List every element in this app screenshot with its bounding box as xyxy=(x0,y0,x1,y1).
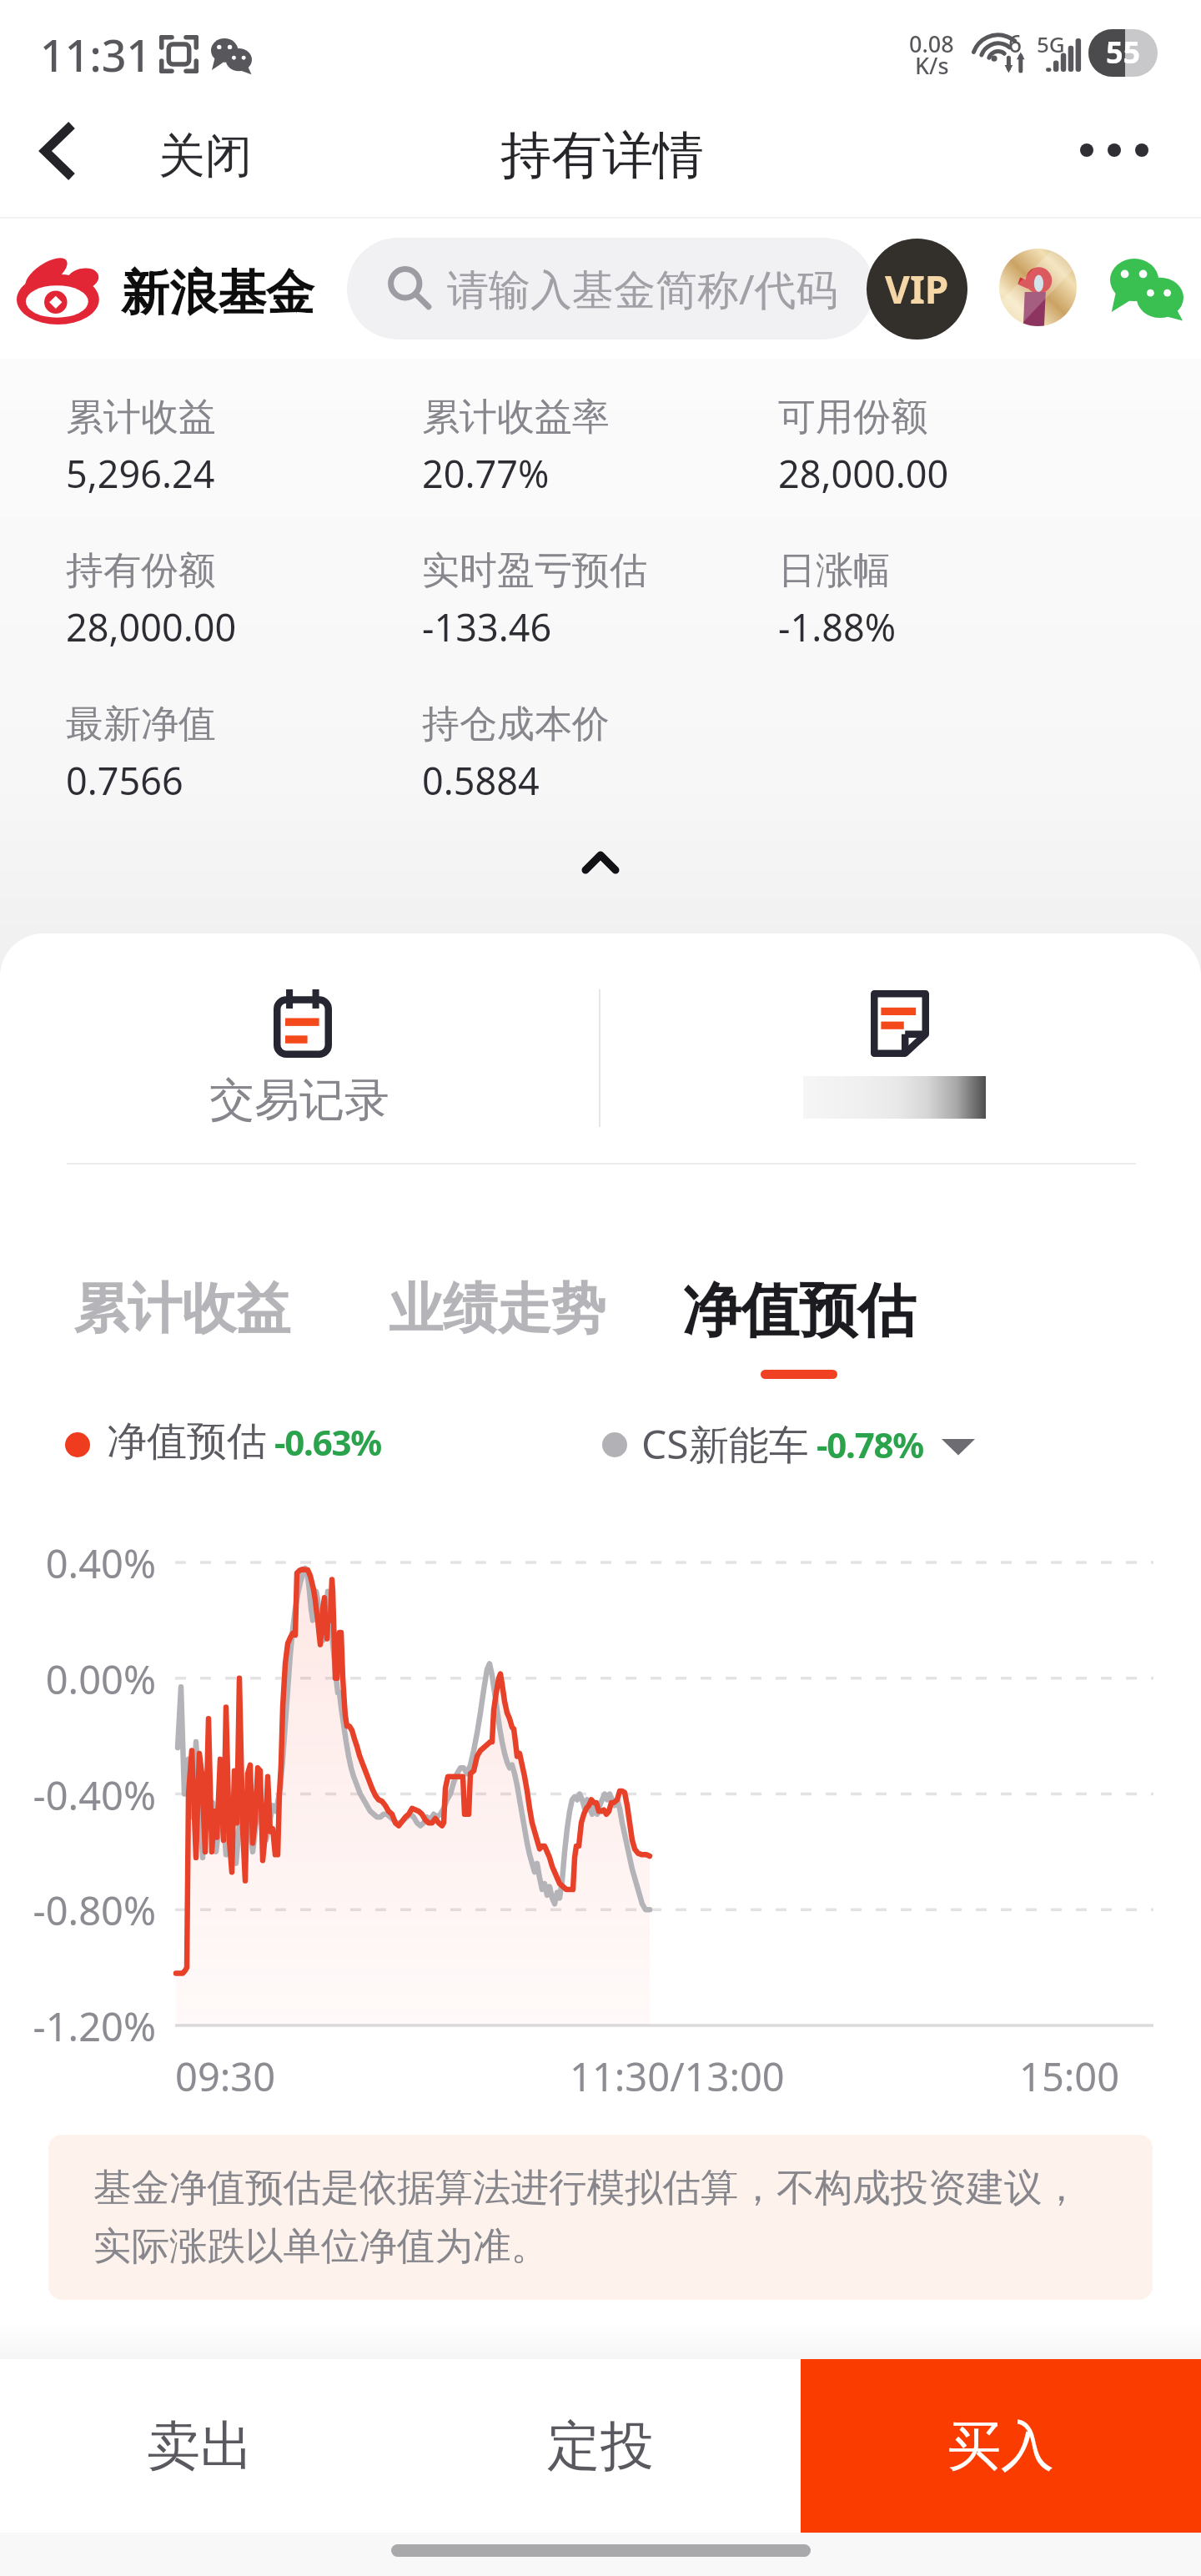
staticText: 定投 xyxy=(547,2412,654,2480)
staticText: CS新能车 xyxy=(641,1416,809,1472)
staticText: 可用份额 xyxy=(778,394,928,441)
staticText: 持仓成本价 xyxy=(422,701,610,748)
staticText: 卖出 xyxy=(147,2412,254,2480)
staticText: 累计收益率 xyxy=(422,394,610,441)
staticText: 请输入基金简称/代码 xyxy=(447,260,838,317)
staticText: -0.78% xyxy=(817,1421,923,1468)
button[interactable]: 请输入基金简称/代码 xyxy=(347,238,874,340)
staticText: K/s xyxy=(915,50,949,81)
staticText: 净值预估 xyxy=(682,1275,916,1348)
staticText: 28,000.00 xyxy=(778,448,949,499)
staticText: 累计收益 xyxy=(73,1275,290,1343)
button[interactable]: 交易记录 xyxy=(103,975,503,1155)
button[interactable]: 净值预估 xyxy=(667,1265,931,1389)
staticText: 0.7566 xyxy=(66,755,183,806)
staticText: 买入 xyxy=(947,2412,1054,2480)
staticText: -0.40% xyxy=(0,1768,156,1822)
button[interactable]: 累计收益 xyxy=(58,1265,305,1353)
staticText: 09:30 xyxy=(175,2050,276,2103)
staticText: 新浪基金 xyxy=(121,263,314,324)
staticText: 0.00% xyxy=(0,1653,156,1706)
button[interactable]: 买入 xyxy=(801,2359,1201,2533)
staticText: 5G xyxy=(1037,29,1065,58)
staticText: 最新净值 xyxy=(66,701,216,748)
button[interactable]: 卖出 xyxy=(0,2359,400,2533)
staticText: 15:00 xyxy=(1019,2050,1120,2103)
staticText: 28,000.00 xyxy=(66,601,237,652)
button[interactable]: VIP xyxy=(867,239,967,340)
staticText: 关闭 xyxy=(158,127,252,186)
button[interactable]: Profile xyxy=(999,249,1077,326)
staticText: 11:30/13:00 xyxy=(570,2050,785,2103)
staticText: -1.88% xyxy=(778,601,897,652)
staticText: 0.08 xyxy=(909,28,954,59)
staticText: 业绩走势 xyxy=(389,1275,606,1343)
staticText: 持有详情 xyxy=(500,123,704,188)
button[interactable]: Back xyxy=(13,105,104,197)
button[interactable]: More options xyxy=(1051,118,1178,183)
button[interactable]: 定投 xyxy=(400,2359,801,2533)
staticText: 累计收益 xyxy=(66,394,216,441)
staticText: -0.80% xyxy=(0,1884,156,1937)
staticText: 持有份额 xyxy=(66,547,216,595)
button[interactable]: 业绩走势 xyxy=(374,1265,621,1353)
staticText: -133.46 xyxy=(422,601,552,652)
staticText: 实时盈亏预估 xyxy=(422,547,647,595)
staticText: 交易记录 xyxy=(209,1072,389,1129)
staticText: -0.63% xyxy=(274,1418,381,1466)
button[interactable]: WeChat xyxy=(1110,259,1183,318)
staticText: 基金净值预估是依据算法进行模拟估算，不构成投资建议， 实际涨跌以单位净值为准。 xyxy=(93,2164,1080,2271)
staticText: VIP xyxy=(885,263,949,315)
staticText: -1.20% xyxy=(0,2000,156,2053)
staticText: 净值预估 xyxy=(107,1416,267,1467)
staticText: 11:31 xyxy=(40,25,152,84)
button[interactable]: Collapse details xyxy=(550,813,651,913)
button[interactable]: CS新能车 xyxy=(641,1416,975,1472)
staticText: 日涨幅 xyxy=(778,547,891,595)
staticText: 0.40% xyxy=(0,1537,156,1590)
staticText: 0.5884 xyxy=(422,755,540,806)
button[interactable]: 关闭 xyxy=(133,113,277,199)
button[interactable]: Fund report xyxy=(699,975,1099,1155)
staticText: 20.77% xyxy=(422,448,550,499)
staticText: 6 xyxy=(1008,28,1023,59)
staticText: 5,296.24 xyxy=(66,448,215,499)
staticText: 55 xyxy=(1106,32,1141,73)
